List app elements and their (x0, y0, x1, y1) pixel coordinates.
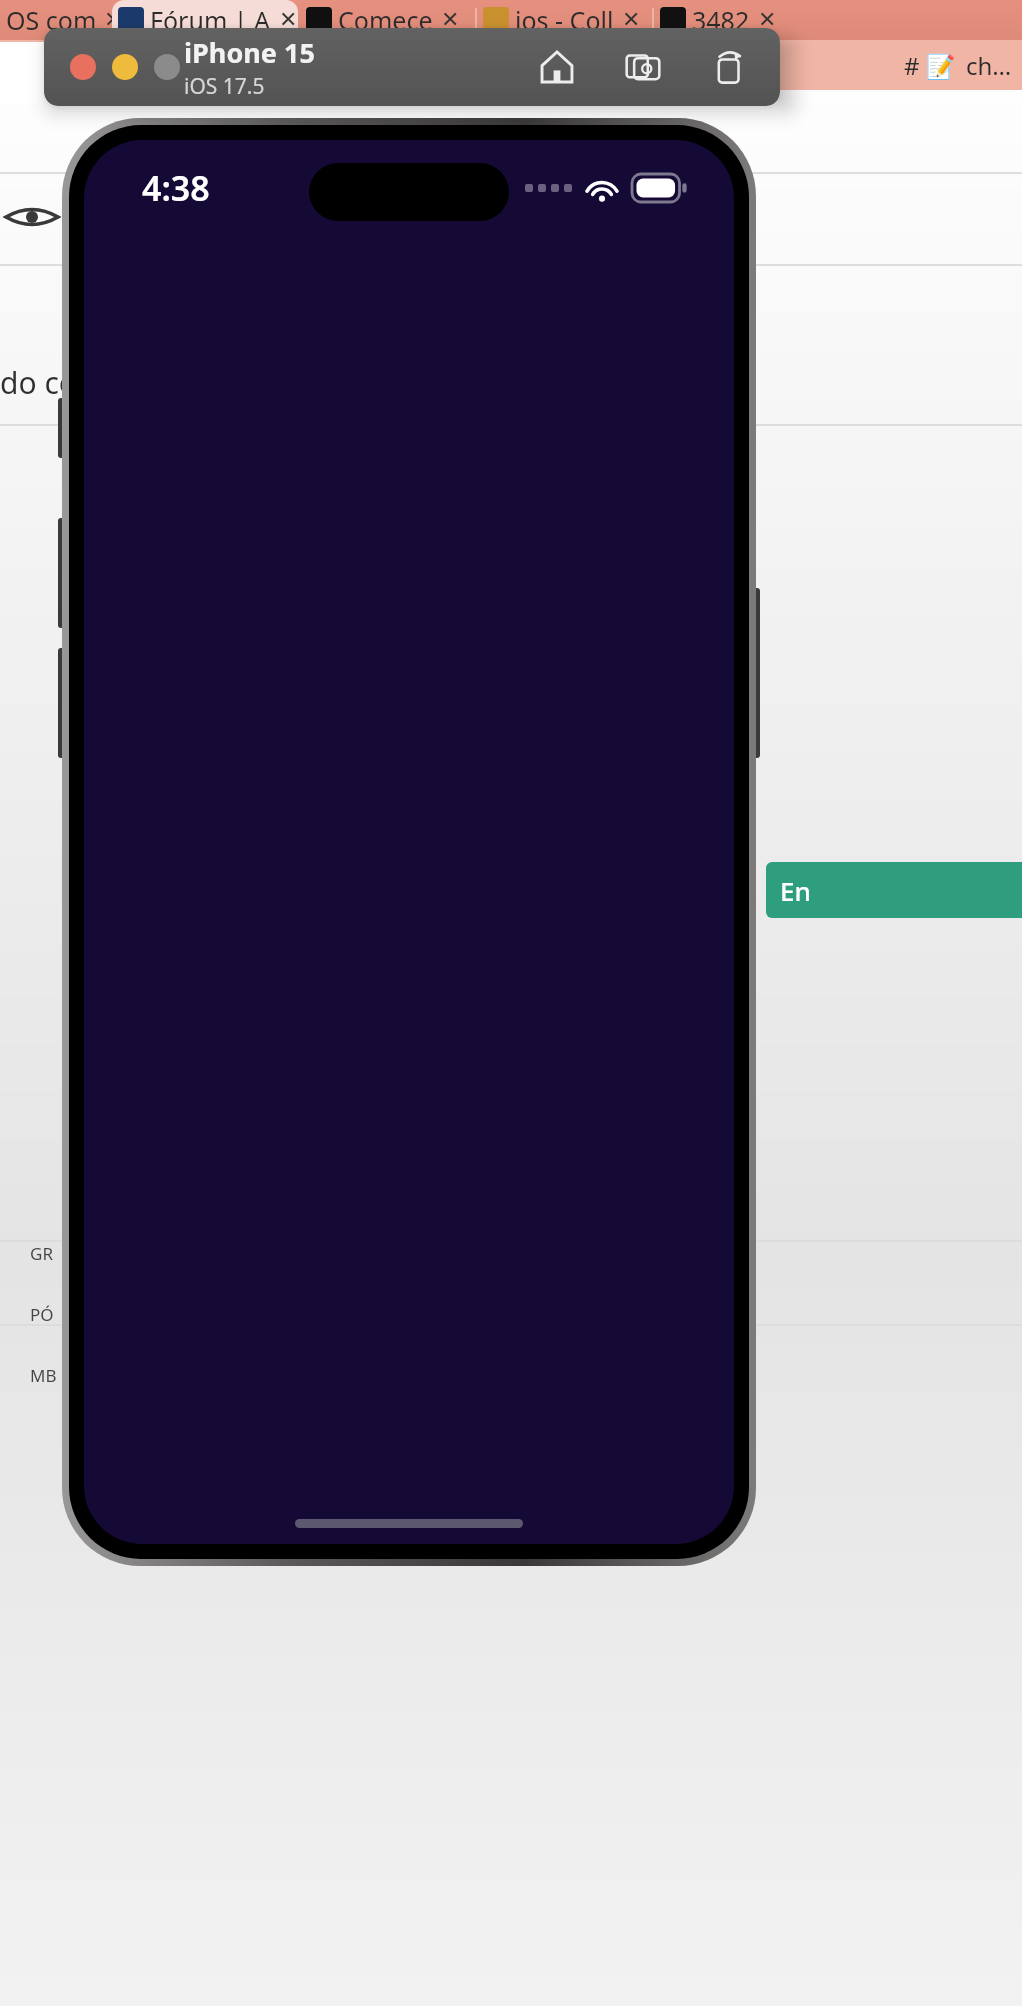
button[interactable]: OS com (0, 0, 110, 40)
staticText: ✕ (279, 7, 292, 33)
button[interactable]: Screenshot (620, 44, 666, 90)
staticText: iOS 17.5 (184, 72, 265, 101)
staticText: ✕ (622, 7, 641, 33)
button[interactable]: Zoom (154, 54, 180, 80)
button[interactable]: Minimize (112, 54, 138, 80)
staticText: do có (0, 362, 77, 403)
staticText: MB (30, 1364, 57, 1387)
staticText: PÓ (30, 1303, 54, 1326)
staticText: ch… (966, 49, 1012, 82)
button[interactable]: En (766, 862, 1022, 918)
staticText: ✕ (441, 7, 460, 33)
button[interactable]: Home (534, 44, 580, 90)
staticText: # 📝 (904, 49, 956, 82)
staticText: ✕ (758, 7, 777, 33)
staticText: 4:38 (142, 165, 210, 211)
staticText: En (780, 873, 811, 908)
staticText: iPhone 15 (184, 34, 315, 71)
staticText: OS com (6, 3, 97, 37)
staticText: Fee (79, 49, 119, 82)
button[interactable]: 3482 (654, 0, 794, 40)
staticText: GR (30, 1242, 53, 1265)
button[interactable]: ios - Coll (477, 0, 652, 40)
button[interactable]: Rotate (706, 44, 752, 90)
button[interactable]: Close (70, 54, 96, 80)
staticText: 3482 (692, 3, 750, 37)
staticText: Comece (338, 3, 433, 37)
button[interactable]: Fórum | A (112, 0, 298, 40)
button[interactable]: Comece (300, 0, 475, 40)
staticText: ios - Coll (515, 3, 614, 37)
staticText: Fórum | A (150, 3, 271, 37)
